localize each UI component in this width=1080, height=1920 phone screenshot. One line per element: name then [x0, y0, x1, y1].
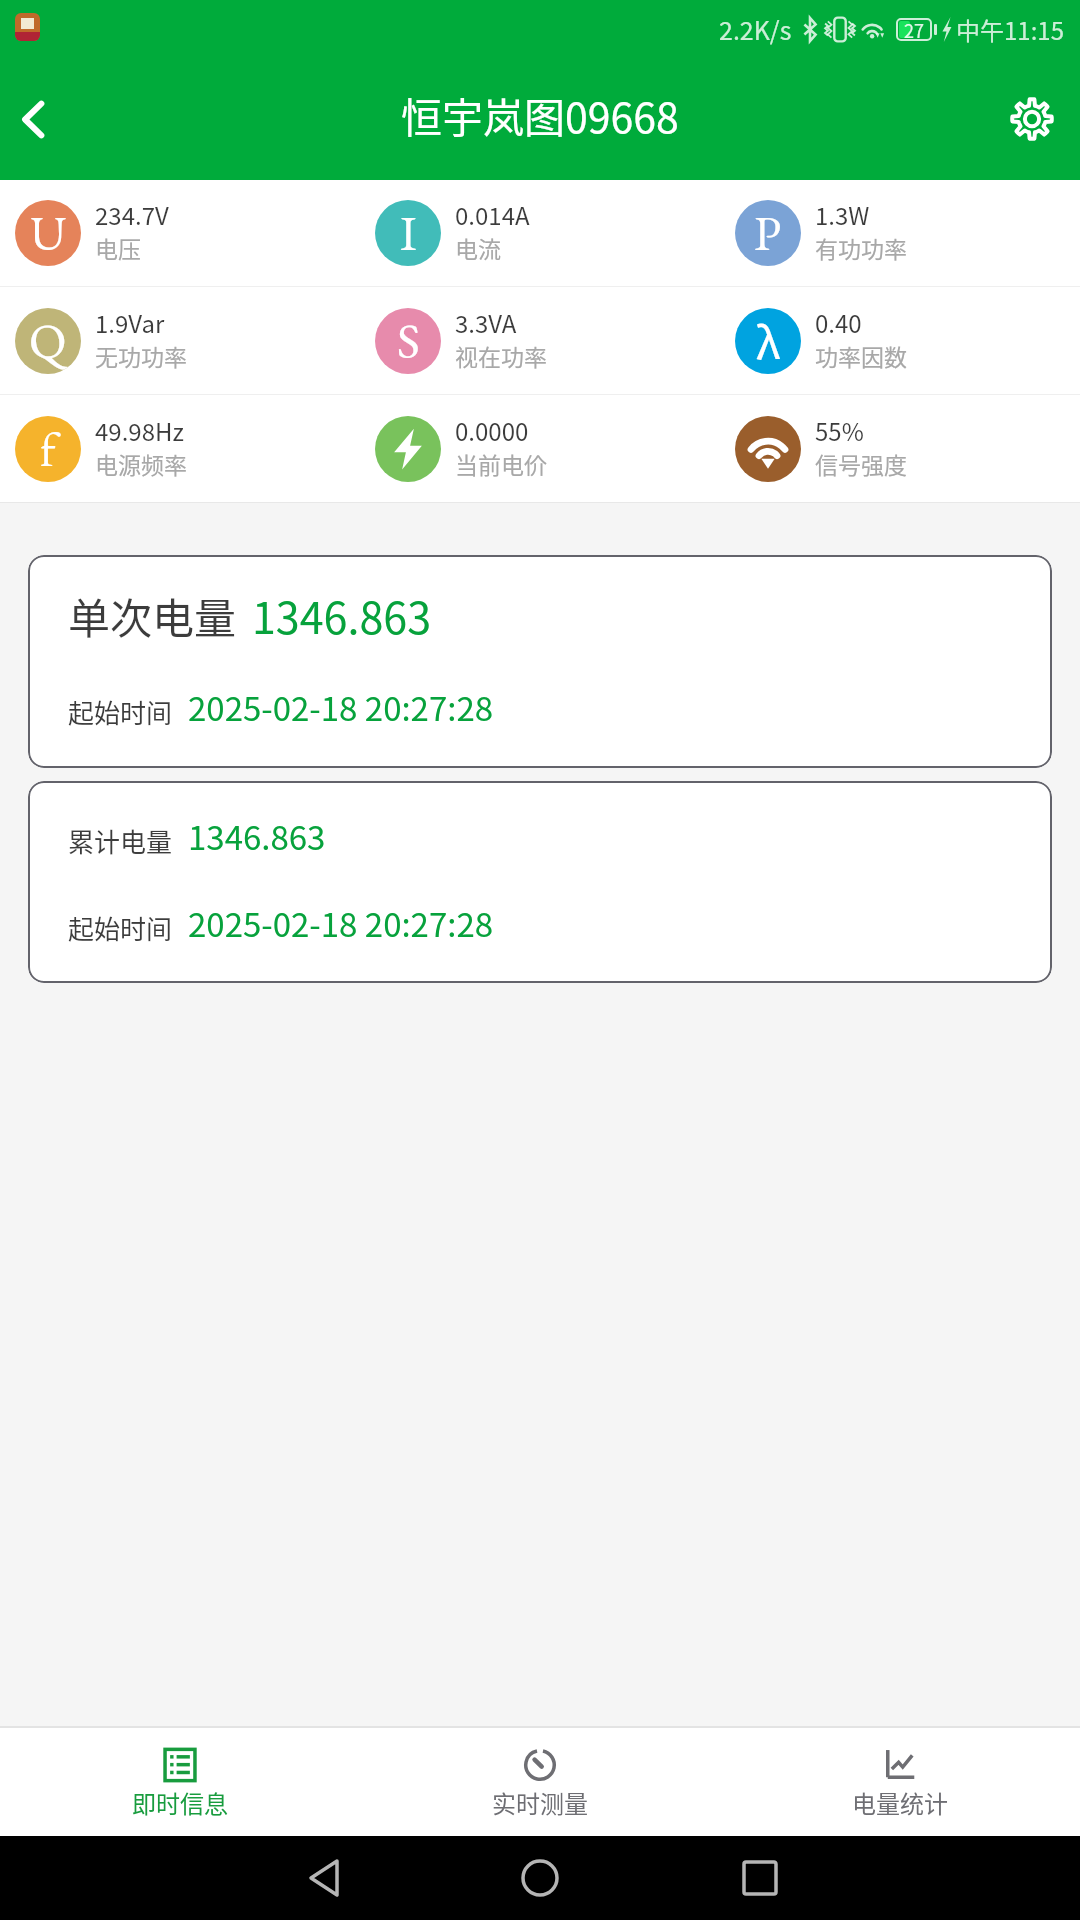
staticText: 0.0000 — [455, 413, 529, 448]
staticText: 1.3W — [815, 197, 870, 232]
button[interactable]: P — [720, 180, 1080, 286]
staticText: 即时信息 — [132, 1785, 228, 1820]
staticText: 起始时间 — [68, 693, 173, 731]
staticText: 3.3VA — [455, 305, 517, 340]
staticText: 无功功率 — [95, 339, 187, 372]
button[interactable]: 电量统计 — [720, 1728, 1080, 1836]
staticText: S — [397, 309, 420, 373]
staticText: 0.014A — [455, 197, 530, 232]
staticText: 2025-02-18 20:27:28 — [188, 683, 494, 731]
staticText: 累计电量 — [68, 822, 173, 860]
staticText: 信号强度 — [815, 447, 907, 480]
staticText: 1346.863 — [188, 812, 326, 860]
staticText: 恒宇岚图09668 — [401, 85, 679, 144]
button[interactable]: λ — [720, 287, 1080, 394]
staticText: 有功功率 — [815, 231, 907, 264]
staticText: 2025-02-18 20:27:28 — [188, 899, 494, 947]
staticText: 0.40 — [815, 305, 862, 340]
staticText: λ — [756, 308, 781, 372]
staticText: P — [754, 201, 782, 265]
button[interactable]: 即时信息 — [0, 1728, 360, 1836]
staticText: 2.2K/s — [719, 11, 792, 47]
button[interactable]: S — [360, 287, 720, 394]
staticText: Q — [29, 309, 67, 373]
staticText: 当前电价 — [455, 447, 547, 480]
button[interactable]: Back — [0, 58, 72, 180]
staticText: 实时测量 — [492, 1785, 588, 1820]
staticText: 55% — [815, 413, 864, 448]
staticText: 1346.863 — [252, 584, 432, 646]
staticText: 1.9Var — [95, 305, 165, 340]
button[interactable]: 0.0000 — [360, 395, 720, 502]
staticText: I — [400, 201, 417, 265]
button[interactable]: Settings — [984, 58, 1080, 180]
button[interactable]: 实时测量 — [360, 1728, 720, 1836]
button[interactable]: f — [0, 395, 360, 502]
button[interactable]: I — [360, 180, 720, 286]
staticText: 234.7V — [95, 197, 169, 232]
staticText: 电流 — [455, 231, 501, 264]
button[interactable]: 单次电量 — [28, 555, 1052, 768]
staticText: 电压 — [95, 231, 141, 264]
button[interactable]: 55% — [720, 395, 1080, 502]
staticText: f — [40, 417, 56, 481]
staticText: 起始时间 — [68, 909, 173, 947]
staticText: 功率因数 — [815, 339, 907, 372]
button[interactable]: 累计电量 — [28, 781, 1052, 983]
staticText: 视在功率 — [455, 339, 547, 372]
button[interactable]: U — [0, 180, 360, 286]
button[interactable]: Q — [0, 287, 360, 394]
staticText: 49.98Hz — [95, 413, 184, 448]
staticText: 27 — [904, 17, 924, 40]
staticText: 电量统计 — [852, 1785, 948, 1820]
staticText: 电源频率 — [95, 447, 187, 480]
staticText: U — [30, 201, 67, 265]
staticText: 中午11:15 — [956, 12, 1064, 47]
staticText: 单次电量 — [68, 585, 237, 646]
